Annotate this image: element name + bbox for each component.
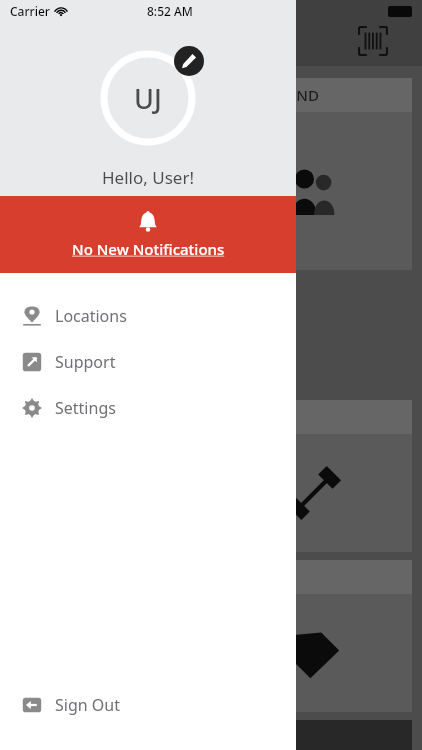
staticText: No New Notifications xyxy=(72,239,225,259)
button[interactable]: TRAINING xyxy=(190,400,412,552)
button[interactable]: REFER A FRIEND xyxy=(190,78,412,270)
button[interactable]: DEALS xyxy=(190,560,412,712)
staticText: Locations xyxy=(55,305,127,327)
button[interactable]: Settings xyxy=(0,385,296,431)
staticText: Carrier xyxy=(10,3,50,19)
button[interactable]: Locations xyxy=(0,293,296,339)
staticText: Settings xyxy=(55,397,116,419)
staticText: Hello, User! xyxy=(102,166,194,189)
staticText: Sign Out xyxy=(55,694,120,716)
staticText: Support xyxy=(55,351,116,373)
button[interactable]: No New Notifications xyxy=(0,196,296,273)
staticText: 8:52 AM xyxy=(147,3,193,19)
staticText: REFER A FRIEND xyxy=(204,85,319,105)
button[interactable]: Sign Out xyxy=(0,682,296,728)
staticText: UJ xyxy=(134,80,162,117)
button[interactable]: Support xyxy=(0,339,296,385)
button[interactable]: Scan barcode xyxy=(358,26,388,56)
button[interactable]: Edit profile photo xyxy=(94,44,202,152)
